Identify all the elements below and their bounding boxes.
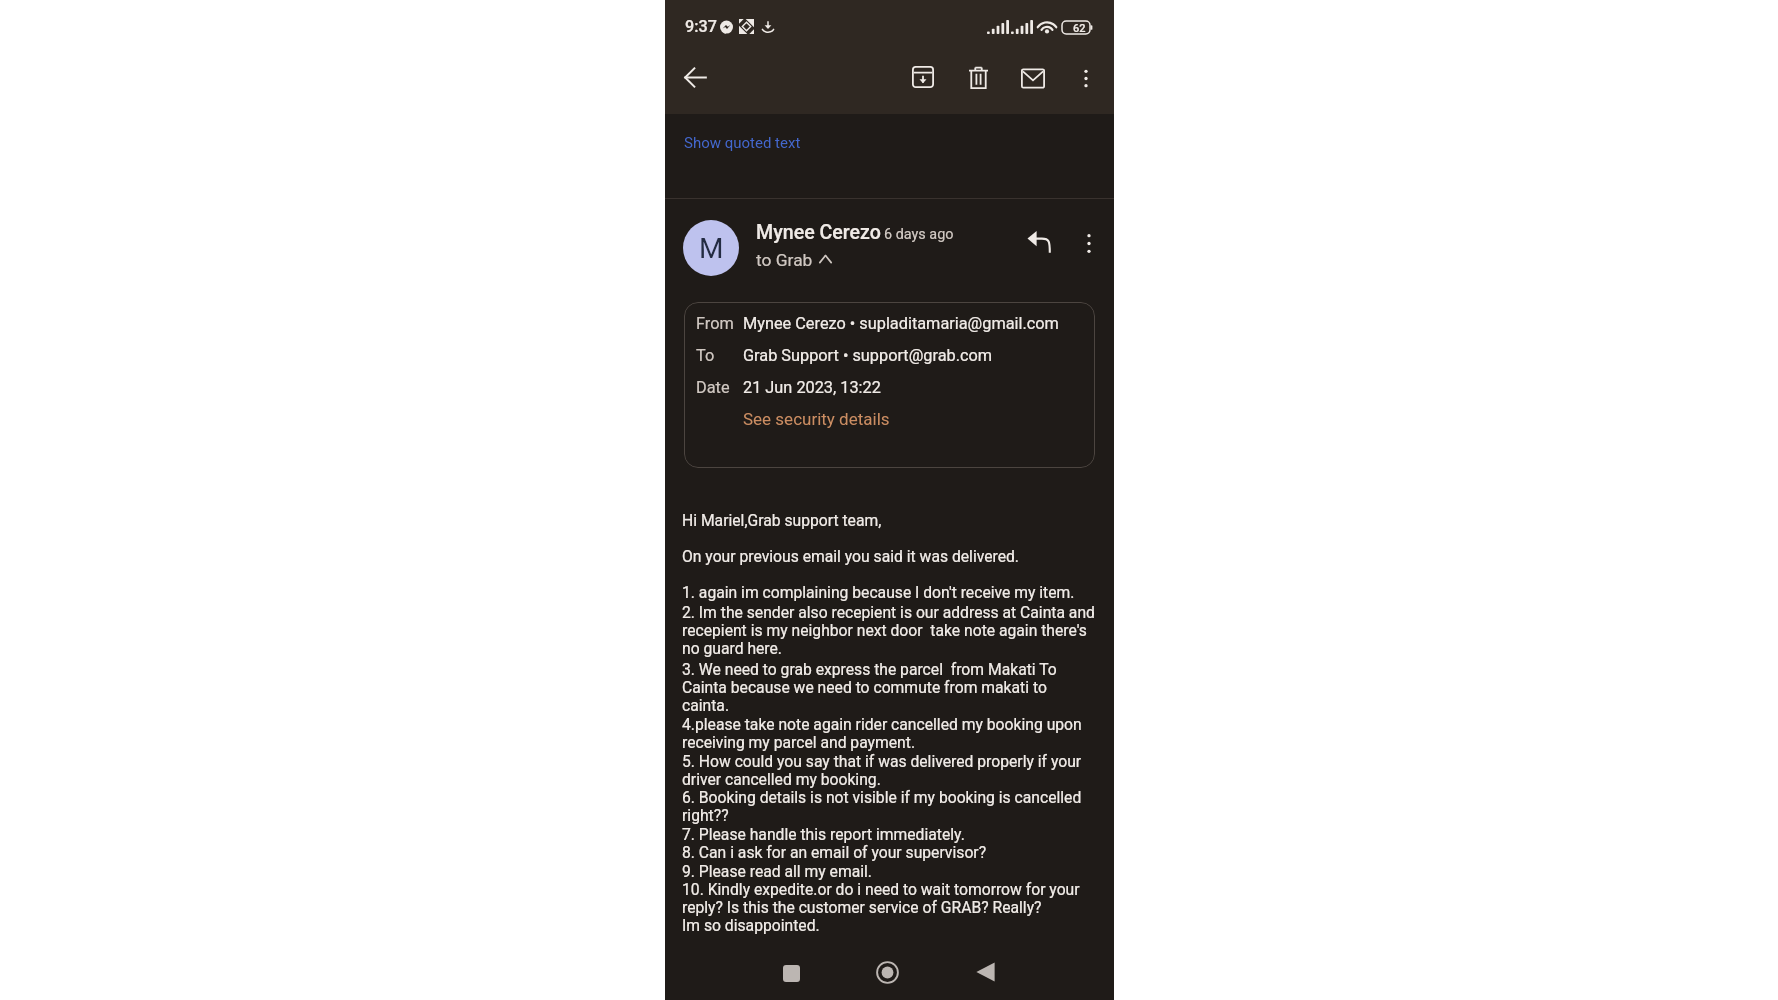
button[interactable]: More options (1066, 58, 1106, 98)
staticText: Hi Mariel,Grab support team, (682, 511, 1097, 529)
staticText: 2. Im the sender also recepient is our a… (682, 603, 1097, 657)
staticText: Mynee Cerezo (756, 221, 881, 244)
button[interactable]: Reply (1018, 220, 1060, 262)
button[interactable]: Delete (956, 55, 1000, 99)
staticText: Mynee Cerezo • supladitamaria@gmail.com (743, 314, 1059, 333)
staticText: 8. Can i ask for an email of your superv… (682, 843, 1097, 861)
button[interactable]: More options (1069, 223, 1109, 263)
staticText: to Grab (756, 250, 813, 270)
staticText: 62 (1073, 22, 1086, 35)
button[interactable]: Back (967, 954, 1003, 990)
staticText: 1. again im complaining because I don't … (682, 583, 1097, 601)
staticText: Show quoted text (684, 134, 801, 152)
button[interactable]: Show quoted text (665, 122, 1114, 164)
button[interactable]: Recents (773, 955, 809, 991)
staticText: Grab Support • support@grab.com (743, 346, 993, 365)
button[interactable]: Back (673, 55, 717, 99)
button[interactable]: From (684, 302, 1095, 468)
staticText: 21 Jun 2023, 13:22 (743, 378, 881, 397)
staticText: 5. How could you say that if was deliver… (682, 752, 1097, 788)
button[interactable]: Archive (901, 55, 945, 99)
staticText: 3. We need to grab express the parcel fr… (682, 660, 1097, 714)
button[interactable]: Sender avatar (683, 220, 739, 276)
button[interactable]: Mark unread (1011, 56, 1055, 100)
staticText: See security details (743, 409, 890, 429)
staticText: 6. Booking details is not visible if my … (682, 788, 1097, 824)
staticText: On your previous email you said it was d… (682, 547, 1097, 565)
staticText: 4.please take note again rider cancelled… (682, 715, 1097, 751)
staticText: Im so disappointed. (682, 916, 1097, 934)
staticText: To (696, 346, 715, 365)
staticText: 9. Please read all my email. (682, 862, 1097, 880)
staticText: 7. Please handle this report immediately… (682, 825, 1097, 843)
staticText: 10. Kindly expedite.or do i need to wait… (682, 880, 1097, 916)
button[interactable]: Home (869, 954, 905, 990)
staticText: Date (696, 378, 730, 397)
staticText: M (699, 232, 724, 265)
staticText: From (696, 314, 734, 333)
staticText: 9:37 (685, 17, 717, 36)
staticText: 6 days ago (884, 226, 954, 243)
